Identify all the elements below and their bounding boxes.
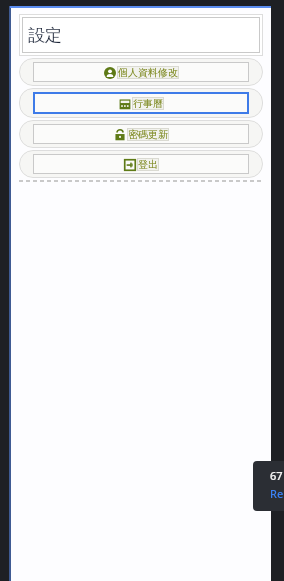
button[interactable]: 登出 xyxy=(19,150,263,178)
button[interactable]: 個人資料修改 xyxy=(19,58,263,86)
staticText: 行事曆 xyxy=(133,97,163,110)
staticText: 設定 xyxy=(28,25,62,46)
button[interactable]: 行事曆 xyxy=(19,88,263,118)
button[interactable]: 密碼更新 xyxy=(19,120,263,148)
staticText: 密碼更新 xyxy=(128,128,168,141)
staticText: 個人資料修改 xyxy=(118,66,178,79)
staticText: 登出 xyxy=(138,158,158,171)
staticText: 67 xyxy=(270,468,283,483)
button[interactable]: 67 xyxy=(253,461,284,511)
staticText: Re xyxy=(270,486,284,501)
